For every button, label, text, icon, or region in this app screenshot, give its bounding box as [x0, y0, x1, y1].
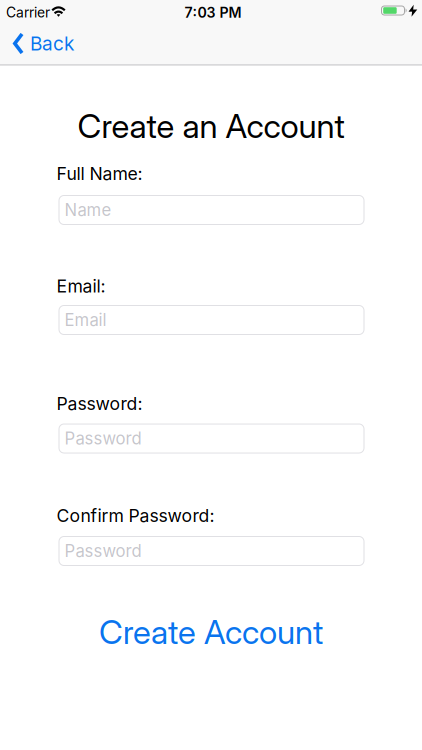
staticText: Name — [64, 200, 111, 220]
staticText: Password: — [56, 393, 142, 414]
textField[interactable]: Password — [66, 428, 364, 449]
staticText: Email — [64, 310, 106, 330]
staticText: Password — [66, 541, 145, 561]
staticText: Password — [66, 428, 145, 449]
staticText: Full Name: — [56, 163, 142, 184]
textField[interactable]: Name — [66, 200, 364, 220]
button[interactable]: Create Account — [99, 612, 323, 652]
staticText: Password — [64, 541, 141, 561]
staticText: Create Account — [99, 612, 323, 652]
textField[interactable]: Password — [66, 541, 364, 561]
staticText: Email — [66, 310, 109, 330]
staticText: Name — [66, 200, 114, 220]
staticText: 7:03 PM — [184, 4, 241, 21]
staticText: Create an Account — [77, 106, 344, 146]
staticText: Email: — [56, 275, 105, 297]
staticText: Password — [64, 428, 141, 449]
textField[interactable]: Email — [66, 310, 364, 330]
staticText: Confirm Password: — [56, 505, 214, 526]
button[interactable]: Back — [13, 28, 93, 58]
staticText: Back — [30, 32, 74, 55]
staticText: Carrier — [6, 4, 50, 21]
